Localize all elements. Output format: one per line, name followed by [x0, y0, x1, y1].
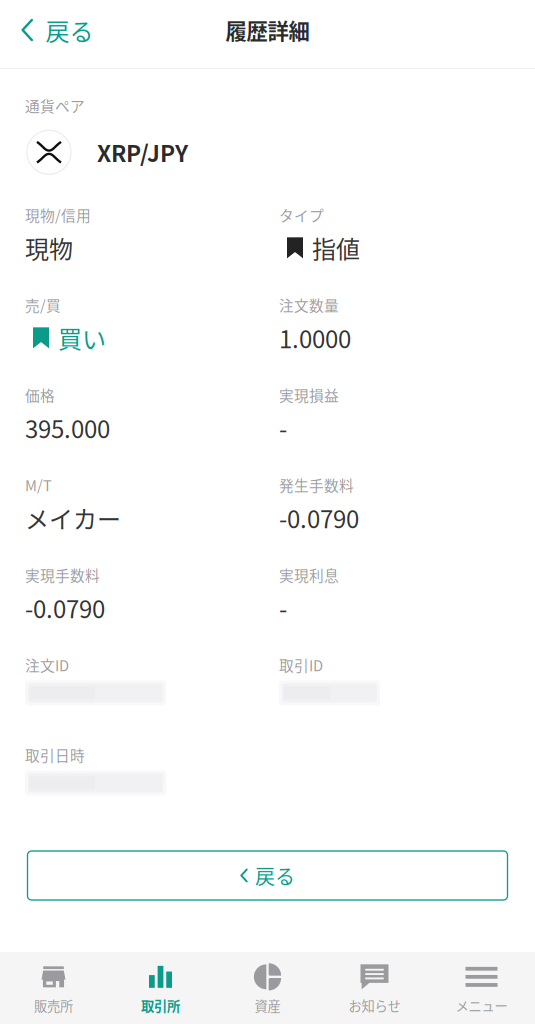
staticText: メイカー	[25, 500, 121, 535]
staticText: 価格	[25, 384, 55, 405]
staticText: 実現利息	[279, 564, 339, 585]
staticText: XRP/JPY	[97, 136, 188, 169]
button[interactable]: 戻る	[27, 851, 507, 900]
staticText: 販売所	[34, 996, 73, 1015]
staticText: 取引ID	[279, 654, 323, 675]
button[interactable]: メニュー	[428, 948, 535, 1024]
staticText: 実現手数料	[25, 564, 100, 585]
staticText: -	[279, 590, 287, 625]
staticText: 資産	[254, 996, 280, 1015]
staticText: -	[279, 410, 287, 445]
staticText: 指値	[312, 230, 360, 265]
button[interactable]: 戻る	[0, 6, 93, 62]
staticText: 戻る	[255, 861, 295, 890]
staticText: -0.0790	[279, 500, 359, 535]
staticText: 現物	[25, 230, 73, 265]
button[interactable]: 資産	[214, 948, 321, 1024]
staticText: 395.000	[25, 410, 110, 445]
staticText: 買い	[58, 320, 106, 355]
button[interactable]: 取引所	[107, 948, 214, 1024]
staticText: タイプ	[279, 204, 324, 225]
staticText: 取引所	[141, 996, 180, 1015]
button[interactable]: お知らせ	[321, 948, 428, 1024]
staticText: 取引日時	[25, 744, 85, 765]
staticText: 現物/信用	[25, 204, 91, 225]
staticText: 注文ID	[25, 654, 69, 675]
staticText: 注文数量	[279, 294, 339, 315]
staticText: 発生手数料	[279, 474, 354, 495]
staticText: 通貨ペア	[25, 95, 85, 116]
staticText: メニュー	[455, 996, 507, 1015]
button[interactable]: 販売所	[0, 948, 107, 1024]
staticText: 売/買	[25, 294, 61, 315]
staticText: M/T	[25, 474, 52, 495]
staticText: 戻る	[45, 13, 93, 47]
staticText: 1.0000	[279, 320, 351, 355]
staticText: お知らせ	[348, 996, 400, 1015]
staticText: 実現損益	[279, 384, 339, 405]
staticText: 履歴詳細	[225, 15, 309, 45]
staticText: -0.0790	[25, 590, 105, 625]
